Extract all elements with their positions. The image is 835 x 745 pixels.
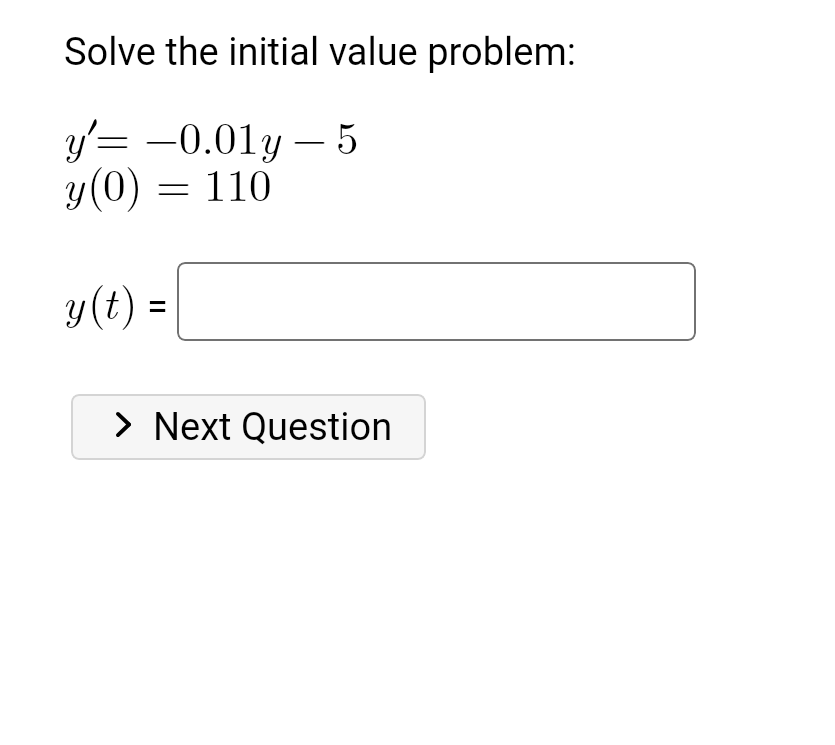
staticText: 110 bbox=[204, 150, 272, 214]
staticText: Solve the initial value problem: bbox=[64, 30, 576, 75]
staticText: − bbox=[292, 103, 328, 167]
staticText: 0.01 bbox=[179, 103, 260, 167]
button[interactable]: Next question bbox=[71, 394, 426, 460]
staticText: ) bbox=[120, 268, 138, 332]
staticText: y bbox=[62, 150, 84, 214]
staticText: ( bbox=[88, 268, 106, 332]
staticText: ) bbox=[125, 150, 143, 214]
staticText: y bbox=[258, 103, 280, 167]
staticText: − bbox=[144, 103, 180, 167]
staticText: y bbox=[62, 268, 84, 332]
staticText: Next Question bbox=[153, 405, 393, 450]
button[interactable]: Answer input field bbox=[177, 262, 696, 341]
staticText: 5 bbox=[336, 103, 359, 167]
staticText: = bbox=[147, 285, 168, 330]
staticText: y bbox=[62, 103, 84, 167]
staticText: ( bbox=[87, 150, 105, 214]
staticText: = bbox=[95, 103, 131, 167]
staticText: t bbox=[102, 268, 117, 332]
staticText: = bbox=[156, 150, 192, 214]
other: Next question bbox=[116, 412, 131, 437]
staticText: 0 bbox=[103, 150, 126, 214]
